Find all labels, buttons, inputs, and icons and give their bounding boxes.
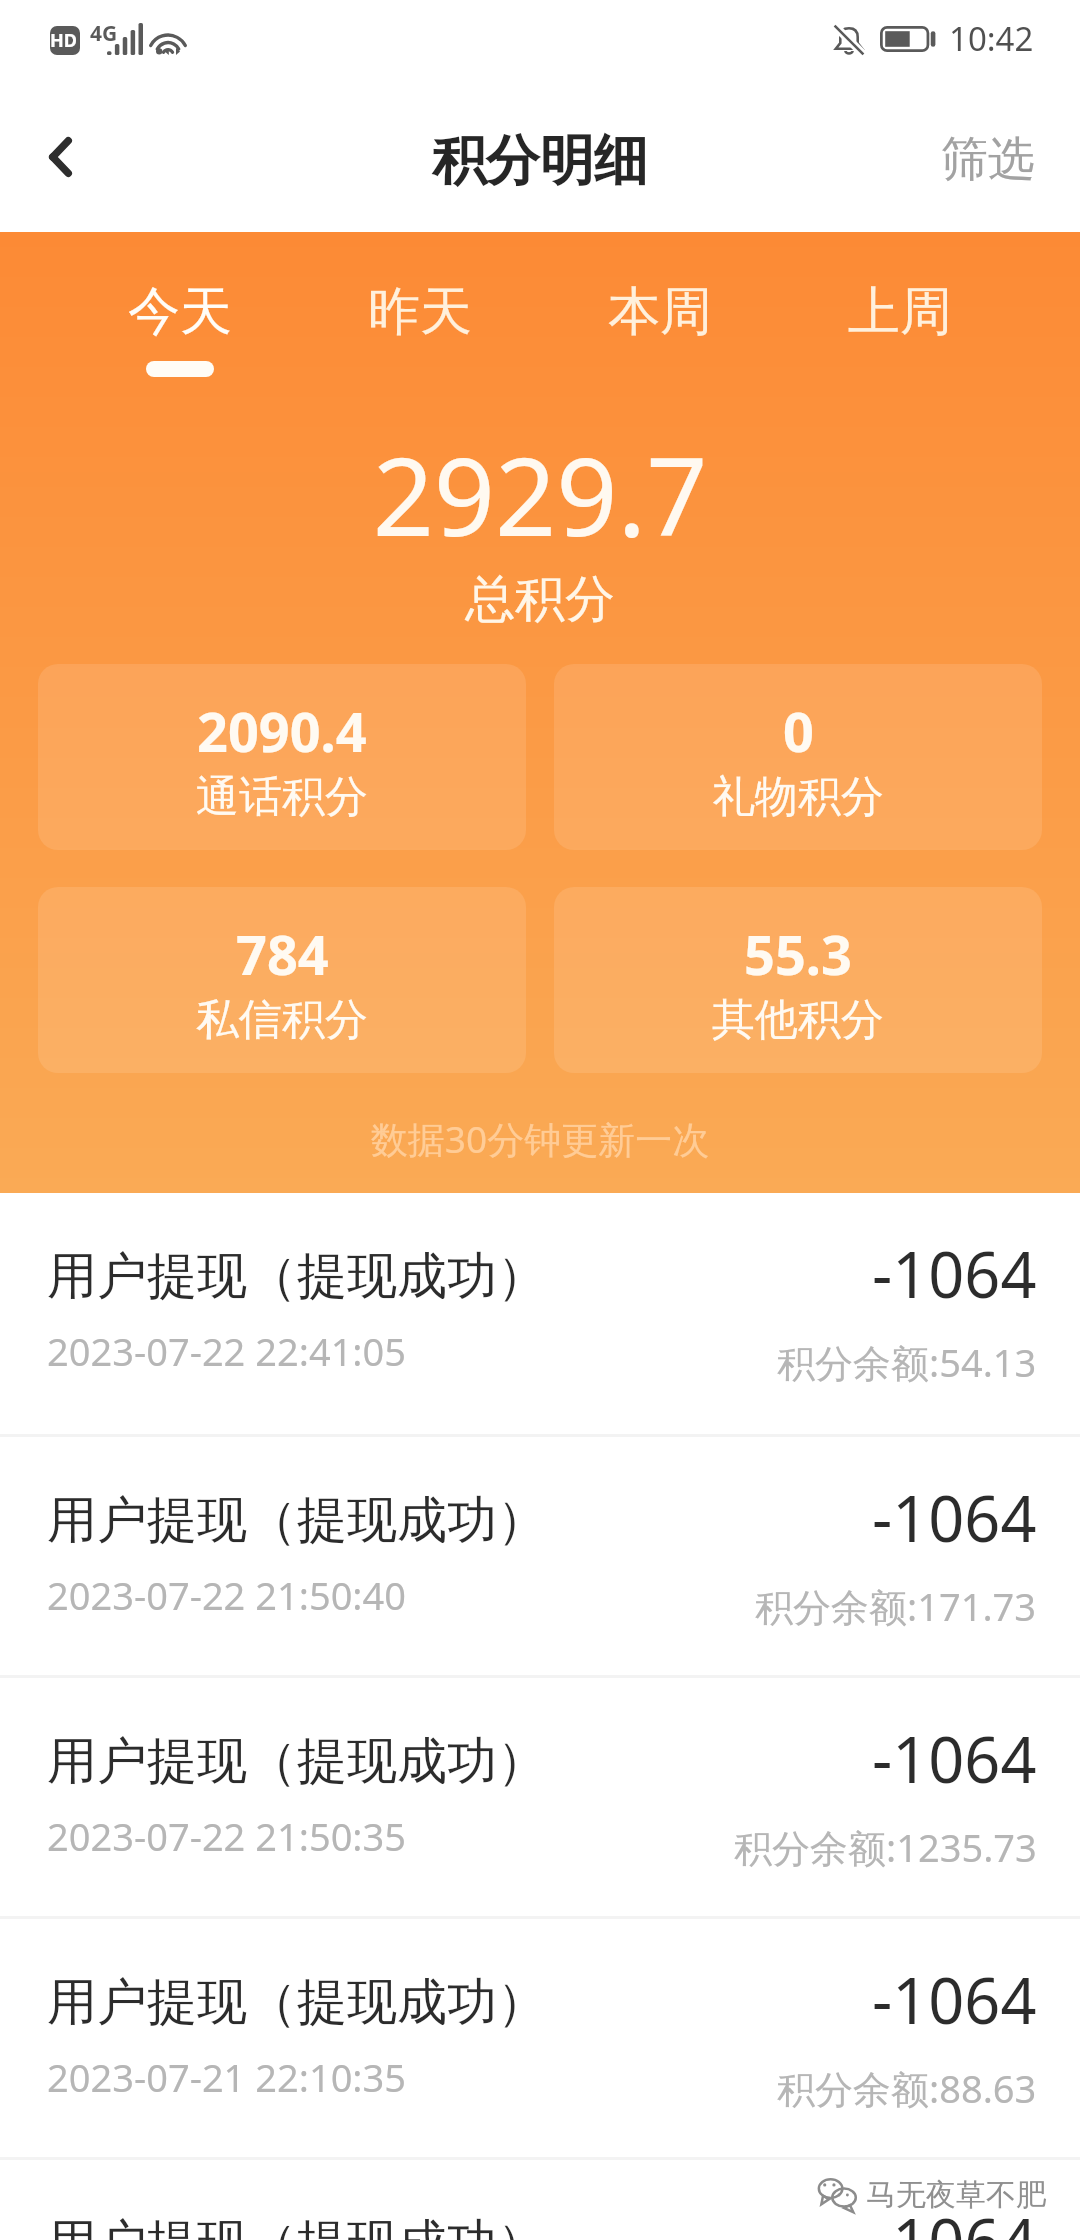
staticText: 总积分: [0, 568, 1080, 631]
staticText: 55.3: [744, 917, 852, 991]
staticText: 数据30分钟更新一次: [0, 1113, 1080, 1164]
staticText: 2023-07-21 22:10:35: [47, 2051, 407, 2103]
button[interactable]: 今天: [60, 279, 300, 389]
staticText: 筛选: [941, 130, 1035, 189]
staticText: 2023-07-22 22:41:05: [47, 1325, 407, 1377]
staticText: -1064: [872, 1957, 1037, 2043]
button[interactable]: 用户提现（提现成功）: [0, 2160, 1080, 2240]
staticText: 用户提现（提现成功）: [47, 1245, 547, 1308]
staticText: 2929.7: [0, 422, 1080, 568]
staticText: 2090.4: [197, 694, 367, 768]
staticText: 0: [783, 694, 814, 768]
staticText: HD: [50, 28, 80, 53]
staticText: 用户提现（提现成功）: [47, 1971, 547, 2034]
staticText: -1064: [872, 1716, 1037, 1802]
staticText: 马无夜草不肥: [866, 2176, 1046, 2214]
staticText: 上周: [848, 279, 952, 345]
button[interactable]: 本周: [540, 279, 780, 389]
button[interactable]: 784: [38, 887, 526, 1073]
staticText: 10:42: [949, 16, 1034, 61]
staticText: 用户提现（提现成功）: [47, 1489, 547, 1552]
button[interactable]: Back: [0, 106, 120, 226]
button[interactable]: 用户提现（提现成功）: [0, 1678, 1080, 1916]
button[interactable]: 55.3: [554, 887, 1042, 1073]
staticText: 私信积分: [196, 993, 368, 1047]
staticText: 通话积分: [196, 770, 368, 824]
staticText: 积分余额:1235.73: [734, 1821, 1037, 1873]
staticText: 积分余额:54.13: [777, 1336, 1037, 1388]
staticText: 4G: [90, 19, 118, 48]
staticText: -1064: [872, 2198, 1037, 2240]
staticText: 礼物积分: [712, 770, 884, 824]
button[interactable]: 昨天: [300, 279, 540, 389]
button[interactable]: 筛选: [903, 111, 1080, 222]
button[interactable]: 用户提现（提现成功）: [0, 1193, 1080, 1434]
staticText: 其他积分: [712, 993, 884, 1047]
staticText: 用户提现（提现成功）: [47, 2212, 547, 2240]
button[interactable]: 0: [554, 664, 1042, 850]
staticText: -1064: [872, 1475, 1037, 1561]
staticText: -1064: [872, 1231, 1037, 1317]
button[interactable]: 2090.4: [38, 664, 526, 850]
button[interactable]: 用户提现（提现成功）: [0, 1919, 1080, 2157]
staticText: 用户提现（提现成功）: [47, 1730, 547, 1793]
staticText: 本周: [608, 279, 712, 345]
staticText: 2023-07-22 21:50:40: [47, 1569, 407, 1621]
button[interactable]: 用户提现（提现成功）: [0, 1437, 1080, 1675]
button[interactable]: 上周: [780, 279, 1020, 389]
staticText: 积分余额:88.63: [777, 2062, 1037, 2114]
staticText: 积分明细: [432, 127, 648, 195]
staticText: 784: [236, 917, 329, 991]
staticText: 昨天: [368, 279, 472, 345]
staticText: 积分余额:171.73: [755, 1580, 1037, 1632]
staticText: 今天: [128, 279, 232, 345]
staticText: 2023-07-22 21:50:35: [47, 1810, 407, 1862]
